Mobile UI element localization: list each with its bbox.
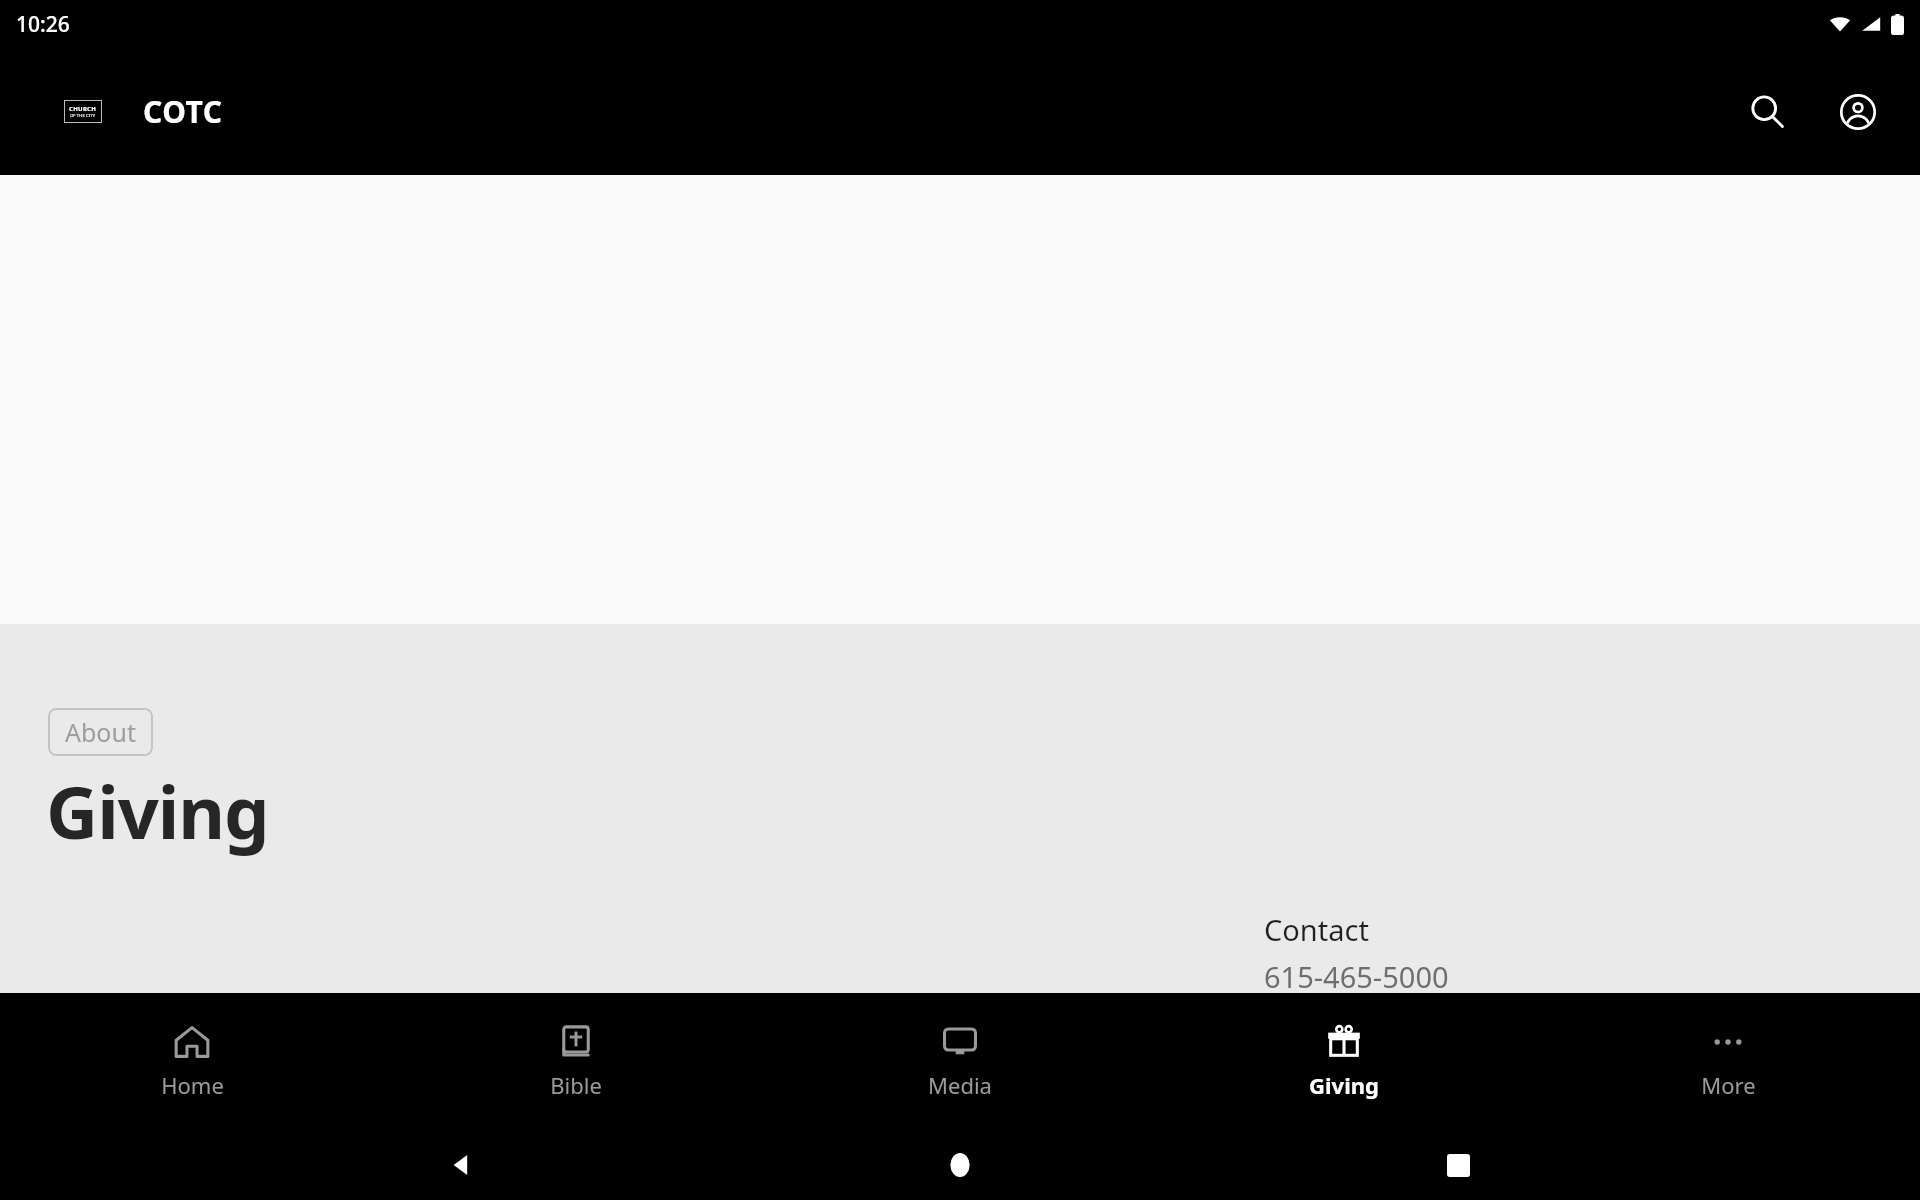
button[interactable]: Home: [0, 993, 384, 1130]
button[interactable]: Home: [924, 1130, 996, 1200]
staticText: Bible: [550, 1070, 602, 1100]
staticText: Contact: [1264, 910, 1369, 949]
button[interactable]: About: [48, 708, 153, 756]
button[interactable]: Giving: [1152, 993, 1536, 1130]
button[interactable]: Account: [1826, 80, 1890, 144]
staticText: Media: [928, 1070, 992, 1100]
button[interactable]: 615-465-5000: [1264, 957, 1449, 993]
button[interactable]: CHURCH: [24, 91, 223, 132]
button[interactable]: Bible: [384, 993, 768, 1130]
staticText: Home: [161, 1070, 224, 1100]
staticText: Giving: [1309, 1070, 1379, 1100]
staticText: About: [65, 715, 136, 749]
button[interactable]: Media: [768, 993, 1152, 1130]
staticText: Giving: [46, 762, 269, 860]
staticText: More: [1701, 1070, 1756, 1100]
staticText: CHURCH: [69, 105, 97, 113]
button[interactable]: Back: [426, 1130, 498, 1200]
staticText: OF THE CITY: [70, 113, 96, 118]
button[interactable]: Search: [1736, 80, 1800, 144]
staticText: COTC: [143, 91, 223, 132]
staticText: 10:26: [16, 10, 70, 39]
button[interactable]: Recent apps: [1422, 1130, 1494, 1200]
button[interactable]: More: [1536, 993, 1920, 1130]
